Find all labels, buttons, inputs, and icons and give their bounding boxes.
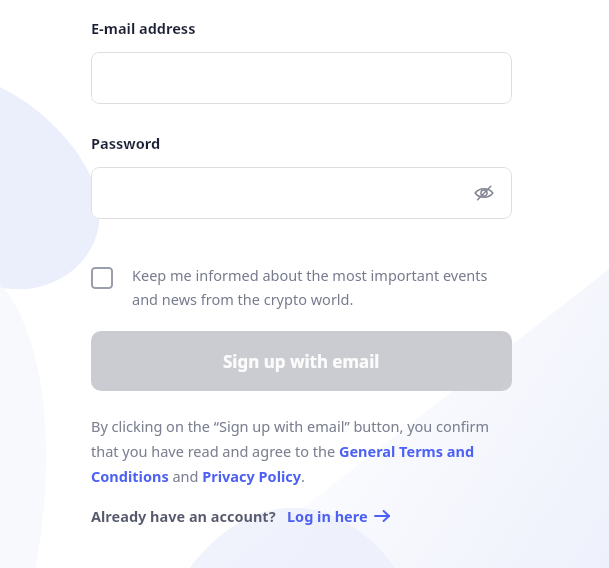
staticText: Password — [91, 133, 161, 153]
button[interactable]: Show password — [91, 167, 512, 219]
button[interactable]: Sign up with email — [91, 331, 512, 391]
button[interactable]: Keep me informed about the most importan… — [91, 265, 512, 309]
button[interactable] — [91, 52, 512, 104]
staticText: Already have an account? — [91, 506, 276, 526]
button[interactable]: Show password — [470, 179, 498, 207]
staticText: E-mail address — [91, 18, 196, 38]
staticText: By clicking on the “Sign up with email” … — [91, 416, 512, 486]
staticText: Log in here — [287, 506, 368, 526]
staticText: Sign up with email — [223, 350, 380, 373]
staticText: Keep me informed about the most importan… — [132, 265, 512, 309]
button[interactable]: Log in here — [287, 506, 389, 526]
